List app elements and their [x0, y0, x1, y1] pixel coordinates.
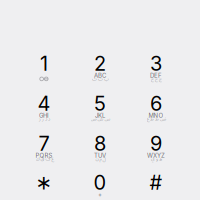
staticText: GHI	[39, 112, 49, 119]
button[interactable]: 9	[128, 130, 184, 170]
staticText: ∗	[35, 171, 52, 194]
staticText: ب ت ث	[91, 74, 108, 84]
button[interactable]: 8	[72, 130, 128, 170]
staticText: 7	[38, 131, 49, 156]
button[interactable]: 5	[72, 90, 128, 130]
staticText: 5	[94, 91, 106, 116]
staticText: MNO	[148, 112, 163, 119]
staticText: 0	[93, 170, 106, 195]
staticText: س ش ص	[90, 114, 110, 124]
staticText: JKL	[95, 112, 105, 119]
button[interactable]: 7	[16, 130, 72, 170]
staticText: ج ح خ	[150, 74, 161, 84]
button[interactable]: 4	[16, 90, 72, 130]
staticText: 4	[37, 91, 50, 116]
staticText: ل م ن	[95, 154, 105, 164]
button[interactable]: star	[16, 169, 72, 200]
staticText: 3	[150, 51, 162, 76]
staticText: +	[98, 191, 102, 198]
staticText: 6	[150, 91, 162, 116]
button[interactable]: 6	[128, 90, 184, 130]
button[interactable]: pound	[128, 169, 184, 200]
staticText: غ ف ق ك	[35, 154, 53, 164]
button[interactable]: 3	[128, 50, 184, 90]
staticText: 9	[150, 131, 162, 156]
staticText: PQRS	[35, 152, 52, 159]
staticText: ه و ي	[150, 154, 161, 164]
staticText: 1	[40, 51, 48, 76]
staticText: DEF	[150, 72, 162, 79]
staticText: TUV	[94, 152, 106, 159]
staticText: 8	[94, 131, 106, 156]
button[interactable]: 1 voicemail	[16, 50, 72, 90]
staticText: 2	[94, 51, 106, 76]
staticText: #	[149, 170, 162, 195]
staticText: ض ط ظ ع	[146, 114, 165, 124]
button[interactable]: 2	[72, 50, 128, 90]
staticText: د ذ ر ز	[38, 114, 49, 124]
staticText: ABC	[94, 72, 106, 79]
staticText: WXYZ	[147, 152, 165, 159]
button[interactable]: 0 plus	[72, 169, 128, 200]
